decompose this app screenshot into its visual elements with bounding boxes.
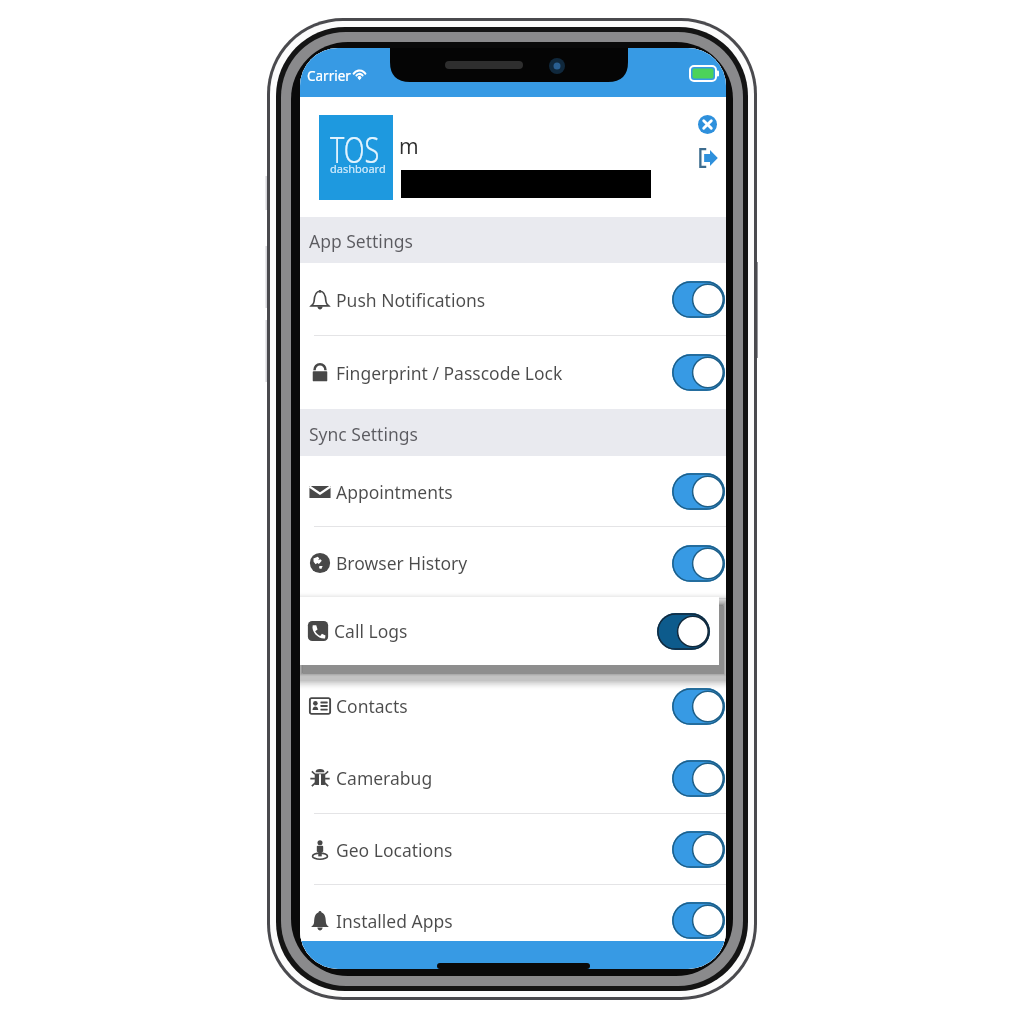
button[interactable]: Contacts bbox=[300, 670, 726, 742]
staticText: Push Notifications bbox=[336, 288, 486, 312]
staticText: Appointments bbox=[336, 480, 453, 504]
staticText: Carrier bbox=[307, 67, 351, 85]
staticText: Browser History bbox=[336, 551, 468, 575]
staticText: TOS bbox=[330, 123, 380, 174]
button[interactable]: Fingerprint / Passcode Lock bbox=[300, 336, 726, 409]
staticText: Camerabug bbox=[336, 766, 433, 790]
staticText: dashboard bbox=[330, 161, 386, 176]
staticText: Fingerprint / Passcode Lock bbox=[336, 361, 563, 385]
staticText: m bbox=[399, 132, 419, 161]
button[interactable]: Appointments bbox=[300, 456, 726, 527]
staticText: Call Logs bbox=[334, 619, 408, 643]
button[interactable]: Close bbox=[690, 107, 724, 141]
button[interactable]: Browser History bbox=[300, 527, 726, 599]
staticText: Installed Apps bbox=[336, 909, 453, 933]
button[interactable]: Camerabug bbox=[300, 742, 726, 814]
staticText: App Settings bbox=[309, 229, 413, 253]
button[interactable]: Log out bbox=[690, 141, 724, 175]
staticText: Geo Locations bbox=[336, 838, 453, 862]
staticText: Sync Settings bbox=[309, 422, 418, 446]
button[interactable]: Call Logs bbox=[300, 597, 719, 665]
staticText: Contacts bbox=[336, 694, 408, 718]
button[interactable]: Geo Locations bbox=[300, 814, 726, 885]
button[interactable]: Push Notifications bbox=[300, 263, 726, 336]
button[interactable]: Installed Apps bbox=[300, 885, 726, 956]
